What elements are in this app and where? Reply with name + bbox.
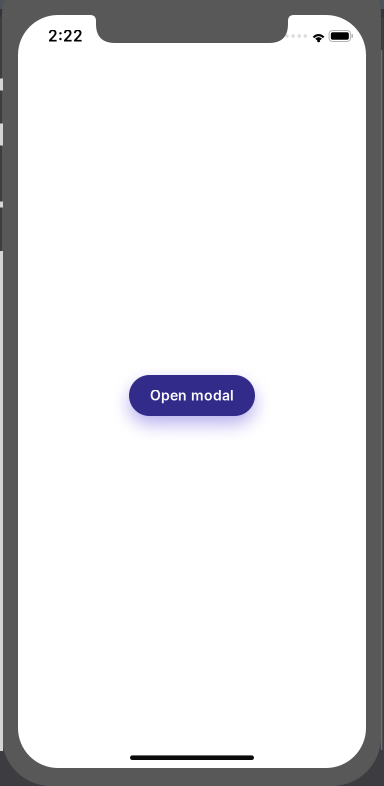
button[interactable]: Open modal bbox=[129, 375, 255, 416]
staticText: 2:22 bbox=[48, 27, 83, 45]
staticText: Open modal bbox=[150, 387, 234, 404]
